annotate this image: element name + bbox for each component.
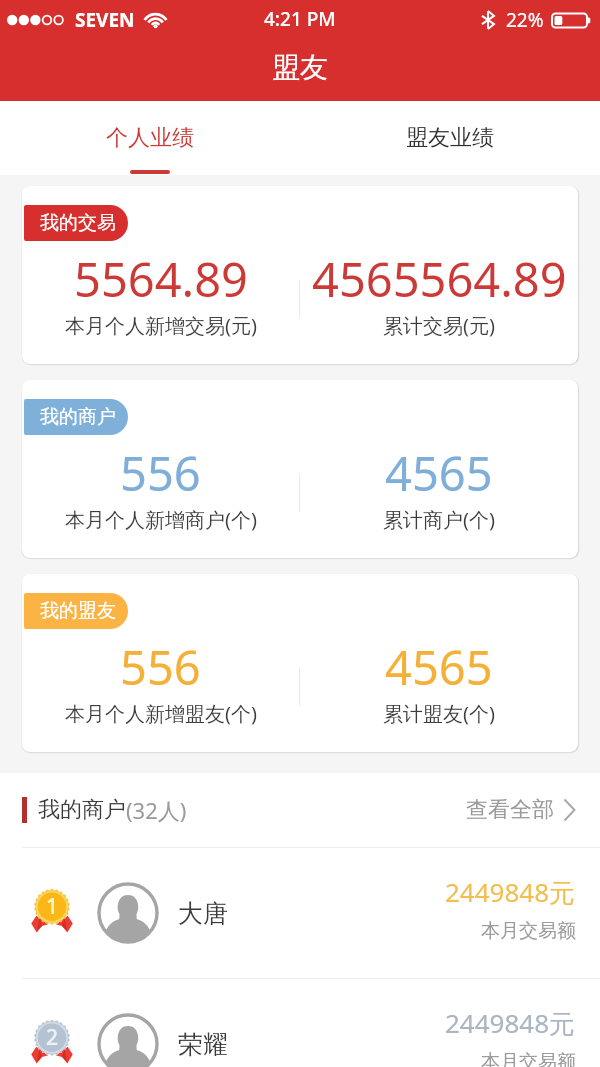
button[interactable]: 查看全部 View all merchants: [466, 788, 576, 832]
staticText: 我的商户: [40, 405, 116, 429]
staticText: 我的盟友: [40, 599, 116, 623]
staticText: 4565: [385, 441, 493, 505]
button[interactable]: 盟友业绩: [300, 101, 600, 175]
staticText: 1: [46, 892, 59, 921]
staticText: 荣耀: [178, 1029, 228, 1060]
staticText: 5564.89: [74, 247, 248, 311]
staticText: SEVEN: [75, 7, 135, 33]
staticText: 2449848元: [445, 874, 576, 910]
staticText: 本月个人新增盟友(个): [65, 700, 257, 727]
staticText: 22%: [506, 7, 544, 33]
staticText: 我的商户: [38, 796, 126, 824]
staticText: 盟友业绩: [406, 124, 494, 152]
staticText: 盟友: [272, 50, 328, 85]
button[interactable]: 1: [0, 848, 600, 978]
staticText: 2449848元: [445, 1005, 576, 1041]
button[interactable]: 个人业绩: [0, 101, 300, 175]
staticText: 本月交易额: [481, 919, 576, 943]
staticText: (32人): [126, 795, 187, 825]
staticText: 累计盟友(个): [383, 700, 495, 727]
staticText: 556: [120, 441, 201, 505]
staticText: 累计交易(元): [383, 312, 495, 339]
button[interactable]: 我的商户: [22, 380, 578, 558]
staticText: 我的交易: [40, 211, 116, 235]
staticText: 个人业绩: [106, 124, 194, 152]
button[interactable]: 我的交易: [22, 186, 578, 364]
staticText: 本月个人新增商户(个): [65, 506, 257, 533]
staticText: 4:21 PM: [264, 6, 336, 32]
staticText: 大唐: [178, 898, 228, 929]
staticText: 2: [46, 1023, 59, 1052]
staticText: 4565: [385, 635, 493, 699]
staticText: 查看全部: [466, 796, 554, 824]
staticText: 4565564.89: [312, 247, 567, 311]
button[interactable]: 2: [0, 979, 600, 1067]
staticText: 本月个人新增交易(元): [65, 312, 257, 339]
button[interactable]: 我的盟友: [22, 574, 578, 752]
staticText: 556: [120, 635, 201, 699]
staticText: 累计商户(个): [383, 506, 495, 533]
staticText: 本月交易额: [481, 1050, 576, 1067]
